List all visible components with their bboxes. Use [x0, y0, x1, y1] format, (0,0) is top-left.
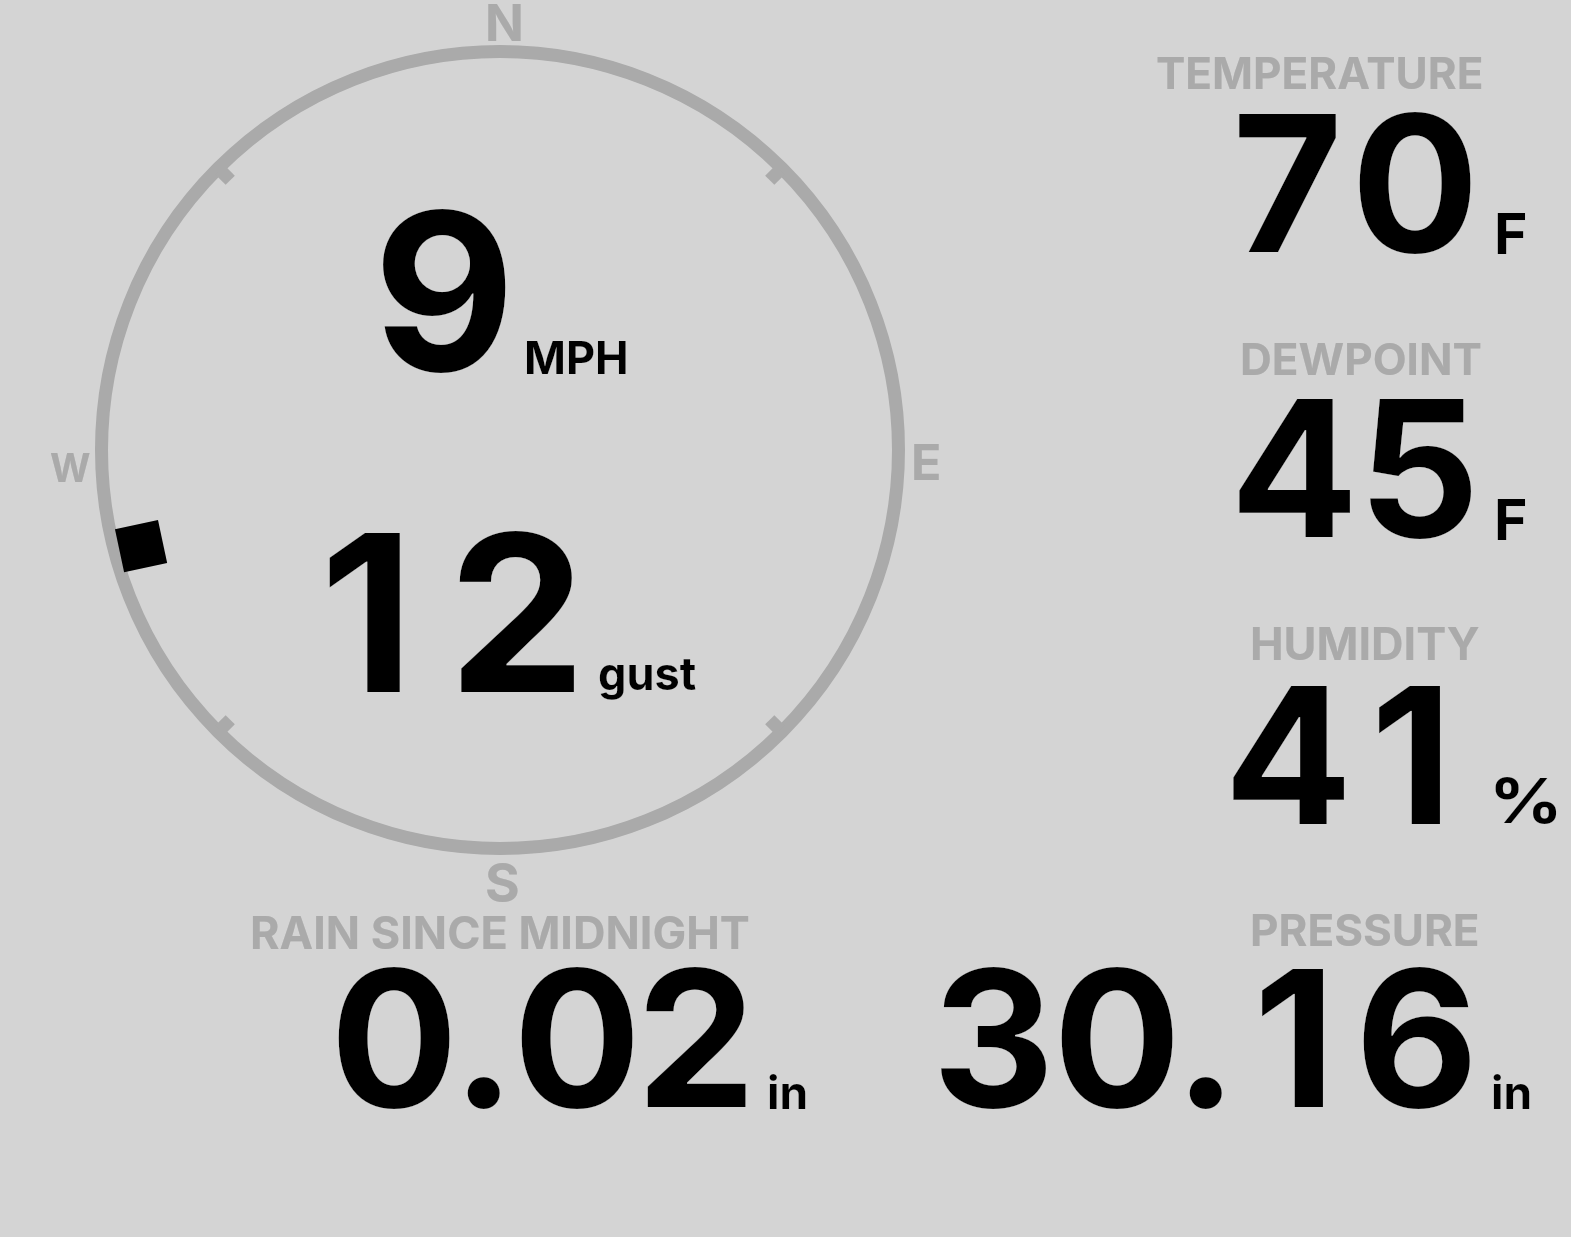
staticText: 1 — [1234, 923, 1355, 1163]
staticText: % — [1489, 763, 1563, 838]
staticText: in — [1491, 1064, 1533, 1120]
staticText: in — [767, 1064, 809, 1120]
staticText: 0 — [1053, 923, 1174, 1163]
staticText: 0 — [513, 923, 635, 1163]
staticText: 0 — [1351, 68, 1478, 338]
staticText: RAIN SINCE MIDNIGHT — [250, 905, 750, 959]
staticText: N — [485, 0, 524, 54]
button[interactable]: Rain since midnight 0.02 inches — [230, 890, 840, 1130]
staticText: HUMIDITY — [1250, 616, 1480, 670]
staticText: 4 — [1224, 640, 1349, 910]
staticText: 5 — [1356, 353, 1482, 623]
button[interactable]: Wind 9 miles per hour, gusting 12, from … — [40, 0, 960, 910]
staticText: 1 — [1349, 640, 1474, 910]
staticText: F — [1494, 199, 1528, 268]
staticText: TEMPERATURE — [1156, 46, 1484, 99]
staticText: DEWPOINT — [1240, 332, 1482, 385]
staticText: 4 — [1230, 353, 1356, 623]
staticText: 6 — [1355, 923, 1476, 1163]
staticText: gust — [598, 646, 697, 700]
staticText: F — [1494, 485, 1528, 554]
button[interactable]: Pressure 30.16 inches of mercury — [890, 890, 1560, 1130]
staticText: MPH — [524, 330, 629, 384]
staticText: . — [452, 923, 513, 1163]
staticText: PRESSURE — [1250, 903, 1480, 956]
staticText: W — [50, 444, 91, 491]
staticText: 0 — [330, 923, 452, 1163]
button[interactable]: Humidity 41 percent — [1120, 590, 1560, 860]
staticText: 1 — [292, 480, 442, 1237]
staticText: 2 — [635, 923, 757, 1163]
button[interactable]: Dewpoint 45 degrees Fahrenheit — [1120, 305, 1560, 575]
staticText: 3 — [932, 923, 1053, 1163]
button[interactable]: Temperature 70 degrees Fahrenheit — [1120, 20, 1560, 290]
staticText: 9 — [373, 159, 514, 1069]
staticText: . — [1174, 923, 1234, 1163]
staticText: 2 — [442, 480, 592, 1237]
staticText: E — [911, 432, 942, 492]
staticText: S — [485, 851, 520, 915]
staticText: 7 — [1224, 68, 1351, 338]
